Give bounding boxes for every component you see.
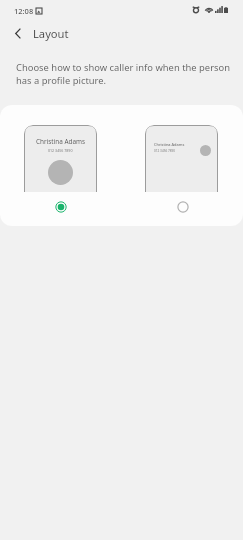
staticText: Christina Adams [36, 137, 86, 146]
button[interactable]: Back [4, 19, 32, 47]
staticText: 012 3456 7890 [48, 148, 73, 153]
button[interactable]: Name above picture [50, 196, 71, 217]
staticText: 012 3456 7890 [154, 149, 176, 153]
button[interactable]: Name beside picture preview [145, 125, 218, 192]
staticText: Layout [33, 26, 69, 41]
staticText: has a profile picture. [16, 74, 107, 87]
staticText: Christina Adams [154, 142, 185, 147]
button[interactable]: Name beside picture [172, 196, 193, 217]
button[interactable]: Name above picture preview [24, 125, 97, 192]
staticText: Choose how to show caller info when the … [16, 61, 230, 74]
staticText: 12:08 [14, 6, 34, 16]
